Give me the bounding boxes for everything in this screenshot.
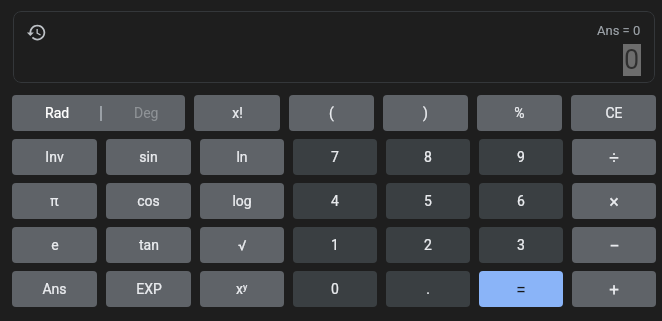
- staticText: Ans: [42, 281, 67, 297]
- staticText: =: [516, 279, 526, 300]
- staticText: 8: [424, 149, 432, 165]
- staticText: ÷: [609, 147, 619, 167]
- staticText: 7: [331, 149, 339, 165]
- staticText: ln: [236, 149, 248, 165]
- button[interactable]: ÷: [572, 139, 656, 175]
- staticText: (: [329, 105, 334, 121]
- button[interactable]: 6: [479, 183, 563, 219]
- button[interactable]: e: [12, 227, 97, 263]
- button[interactable]: Ans: [12, 271, 97, 307]
- button[interactable]: +: [572, 271, 656, 307]
- button[interactable]: 4: [293, 183, 377, 219]
- button[interactable]: log: [200, 183, 284, 219]
- staticText: tan: [139, 237, 159, 253]
- button[interactable]: ×: [572, 183, 656, 219]
- staticText: +: [609, 279, 619, 299]
- staticText: Ans = 0: [597, 23, 641, 38]
- button[interactable]: 2: [386, 227, 470, 263]
- button[interactable]: ln: [200, 139, 284, 175]
- staticText: 0: [624, 44, 640, 76]
- button[interactable]: 5: [386, 183, 470, 219]
- staticText: EXP: [136, 281, 162, 297]
- staticText: x!: [232, 105, 243, 121]
- staticText: 0: [331, 281, 339, 297]
- button[interactable]: 1: [293, 227, 377, 263]
- button[interactable]: 9: [479, 139, 563, 175]
- staticText: 5: [424, 193, 432, 209]
- staticText: 6: [517, 193, 525, 209]
- button[interactable]: cos: [106, 183, 191, 219]
- staticText: xy: [236, 281, 248, 297]
- staticText: Inv: [45, 149, 64, 165]
- button[interactable]: sin: [106, 139, 191, 175]
- staticText: .: [426, 281, 430, 297]
- button[interactable]: ): [383, 95, 468, 131]
- staticText: %: [514, 105, 525, 121]
- button[interactable]: π: [12, 183, 97, 219]
- button[interactable]: 3: [479, 227, 563, 263]
- button[interactable]: xy: [200, 271, 284, 307]
- staticText: cos: [137, 193, 160, 209]
- staticText: CE: [605, 105, 623, 121]
- button[interactable]: History: [24, 20, 48, 44]
- staticText: Rad: [45, 105, 70, 121]
- button[interactable]: EXP: [106, 271, 191, 307]
- button[interactable]: tan: [106, 227, 191, 263]
- button[interactable]: =: [479, 271, 563, 307]
- staticText: sin: [139, 149, 158, 165]
- button[interactable]: −: [572, 227, 656, 263]
- staticText: 2: [424, 237, 432, 253]
- staticText: e: [51, 237, 59, 253]
- button[interactable]: x!: [194, 95, 280, 131]
- staticText: 4: [331, 193, 339, 209]
- staticText: π: [50, 193, 59, 209]
- button[interactable]: 0: [293, 271, 377, 307]
- button[interactable]: %: [477, 95, 562, 131]
- button[interactable]: √: [200, 227, 284, 263]
- button[interactable]: CE: [571, 95, 656, 131]
- button[interactable]: (: [289, 95, 374, 131]
- button[interactable]: Rad: [12, 95, 185, 131]
- staticText: 1: [331, 237, 339, 253]
- staticText: √: [238, 237, 247, 253]
- button[interactable]: 8: [386, 139, 470, 175]
- button[interactable]: Inv: [12, 139, 97, 175]
- staticText: log: [232, 193, 252, 209]
- staticText: Deg: [134, 105, 159, 121]
- staticText: ): [423, 105, 428, 121]
- button[interactable]: 7: [293, 139, 377, 175]
- staticText: 9: [517, 149, 525, 165]
- button[interactable]: .: [386, 271, 470, 307]
- staticText: 3: [517, 237, 525, 253]
- staticText: ×: [609, 191, 619, 212]
- staticText: −: [609, 235, 620, 256]
